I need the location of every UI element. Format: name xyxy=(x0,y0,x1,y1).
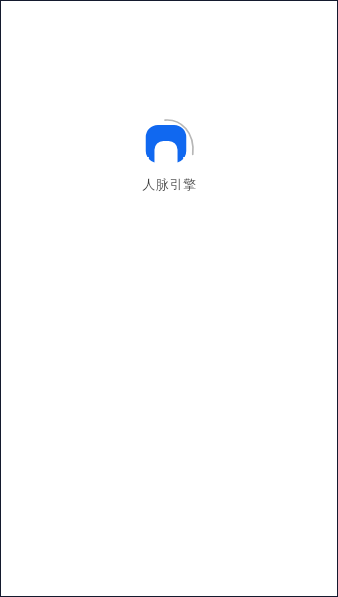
staticText: 人脉引擎 xyxy=(142,176,197,192)
button[interactable]: 人脉引擎 xyxy=(142,116,197,192)
